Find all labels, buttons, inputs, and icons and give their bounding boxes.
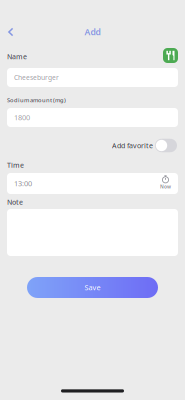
- staticText: Cheeseburger: [14, 73, 59, 82]
- staticText: Add favorite: [112, 141, 153, 150]
- button[interactable]: Back: [0, 23, 21, 41]
- staticText: 1800: [14, 112, 30, 122]
- staticText: Name: [7, 52, 27, 61]
- staticText: 13:00: [14, 178, 32, 188]
- staticText: Sodium amount (mg): [7, 96, 66, 104]
- button[interactable]: Save: [27, 277, 158, 298]
- staticText: Save: [84, 282, 100, 292]
- staticText: Note: [7, 197, 23, 207]
- button[interactable]: 1800: [7, 108, 178, 127]
- button[interactable]: Add favorite: [155, 139, 177, 152]
- button[interactable]: Cheeseburger: [7, 68, 178, 87]
- staticText: Now: [160, 183, 171, 190]
- button[interactable]: Set time to now: [160, 176, 171, 191]
- staticText: Add: [84, 26, 100, 38]
- button[interactable]: Pick food category: [163, 48, 178, 65]
- staticText: Time: [7, 160, 24, 170]
